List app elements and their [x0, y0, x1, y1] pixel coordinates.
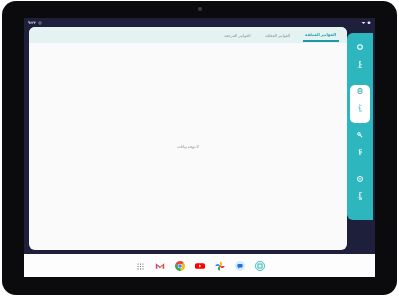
button[interactable]: Google Photos: [213, 259, 226, 272]
staticText: الفواتير المعلقة: [265, 33, 291, 38]
button[interactable]: الفواتير المعلقة: [263, 30, 293, 41]
staticText: طلبات الصيانة: [358, 148, 362, 156]
button[interactable]: All apps: [134, 260, 146, 272]
staticText: الفواتير: [358, 104, 362, 112]
button[interactable]: الإعدادات: [350, 173, 370, 211]
staticText: الفواتير المغلقة: [305, 32, 337, 37]
button[interactable]: إعادة تعيين: [350, 41, 370, 79]
button[interactable]: App: [253, 259, 266, 272]
button[interactable]: طلبات الصيانة: [350, 129, 370, 167]
button[interactable]: Gmail: [153, 259, 166, 272]
button[interactable]: الفواتير المرجعة: [222, 30, 253, 41]
button[interactable]: Chrome: [173, 259, 186, 272]
button[interactable]: YouTube: [193, 259, 206, 272]
staticText: إعادة تعيين: [357, 60, 362, 68]
staticText: ٩:٢٣: [28, 20, 36, 25]
staticText: الإعدادات: [358, 192, 362, 200]
button[interactable]: الفواتير: [350, 85, 370, 123]
staticText: لا توجد بيانات: [177, 144, 199, 149]
button[interactable]: Messages: [233, 259, 246, 272]
button[interactable]: الفواتير المغلقة: [303, 29, 339, 42]
staticText: الفواتير المرجعة: [224, 33, 251, 38]
